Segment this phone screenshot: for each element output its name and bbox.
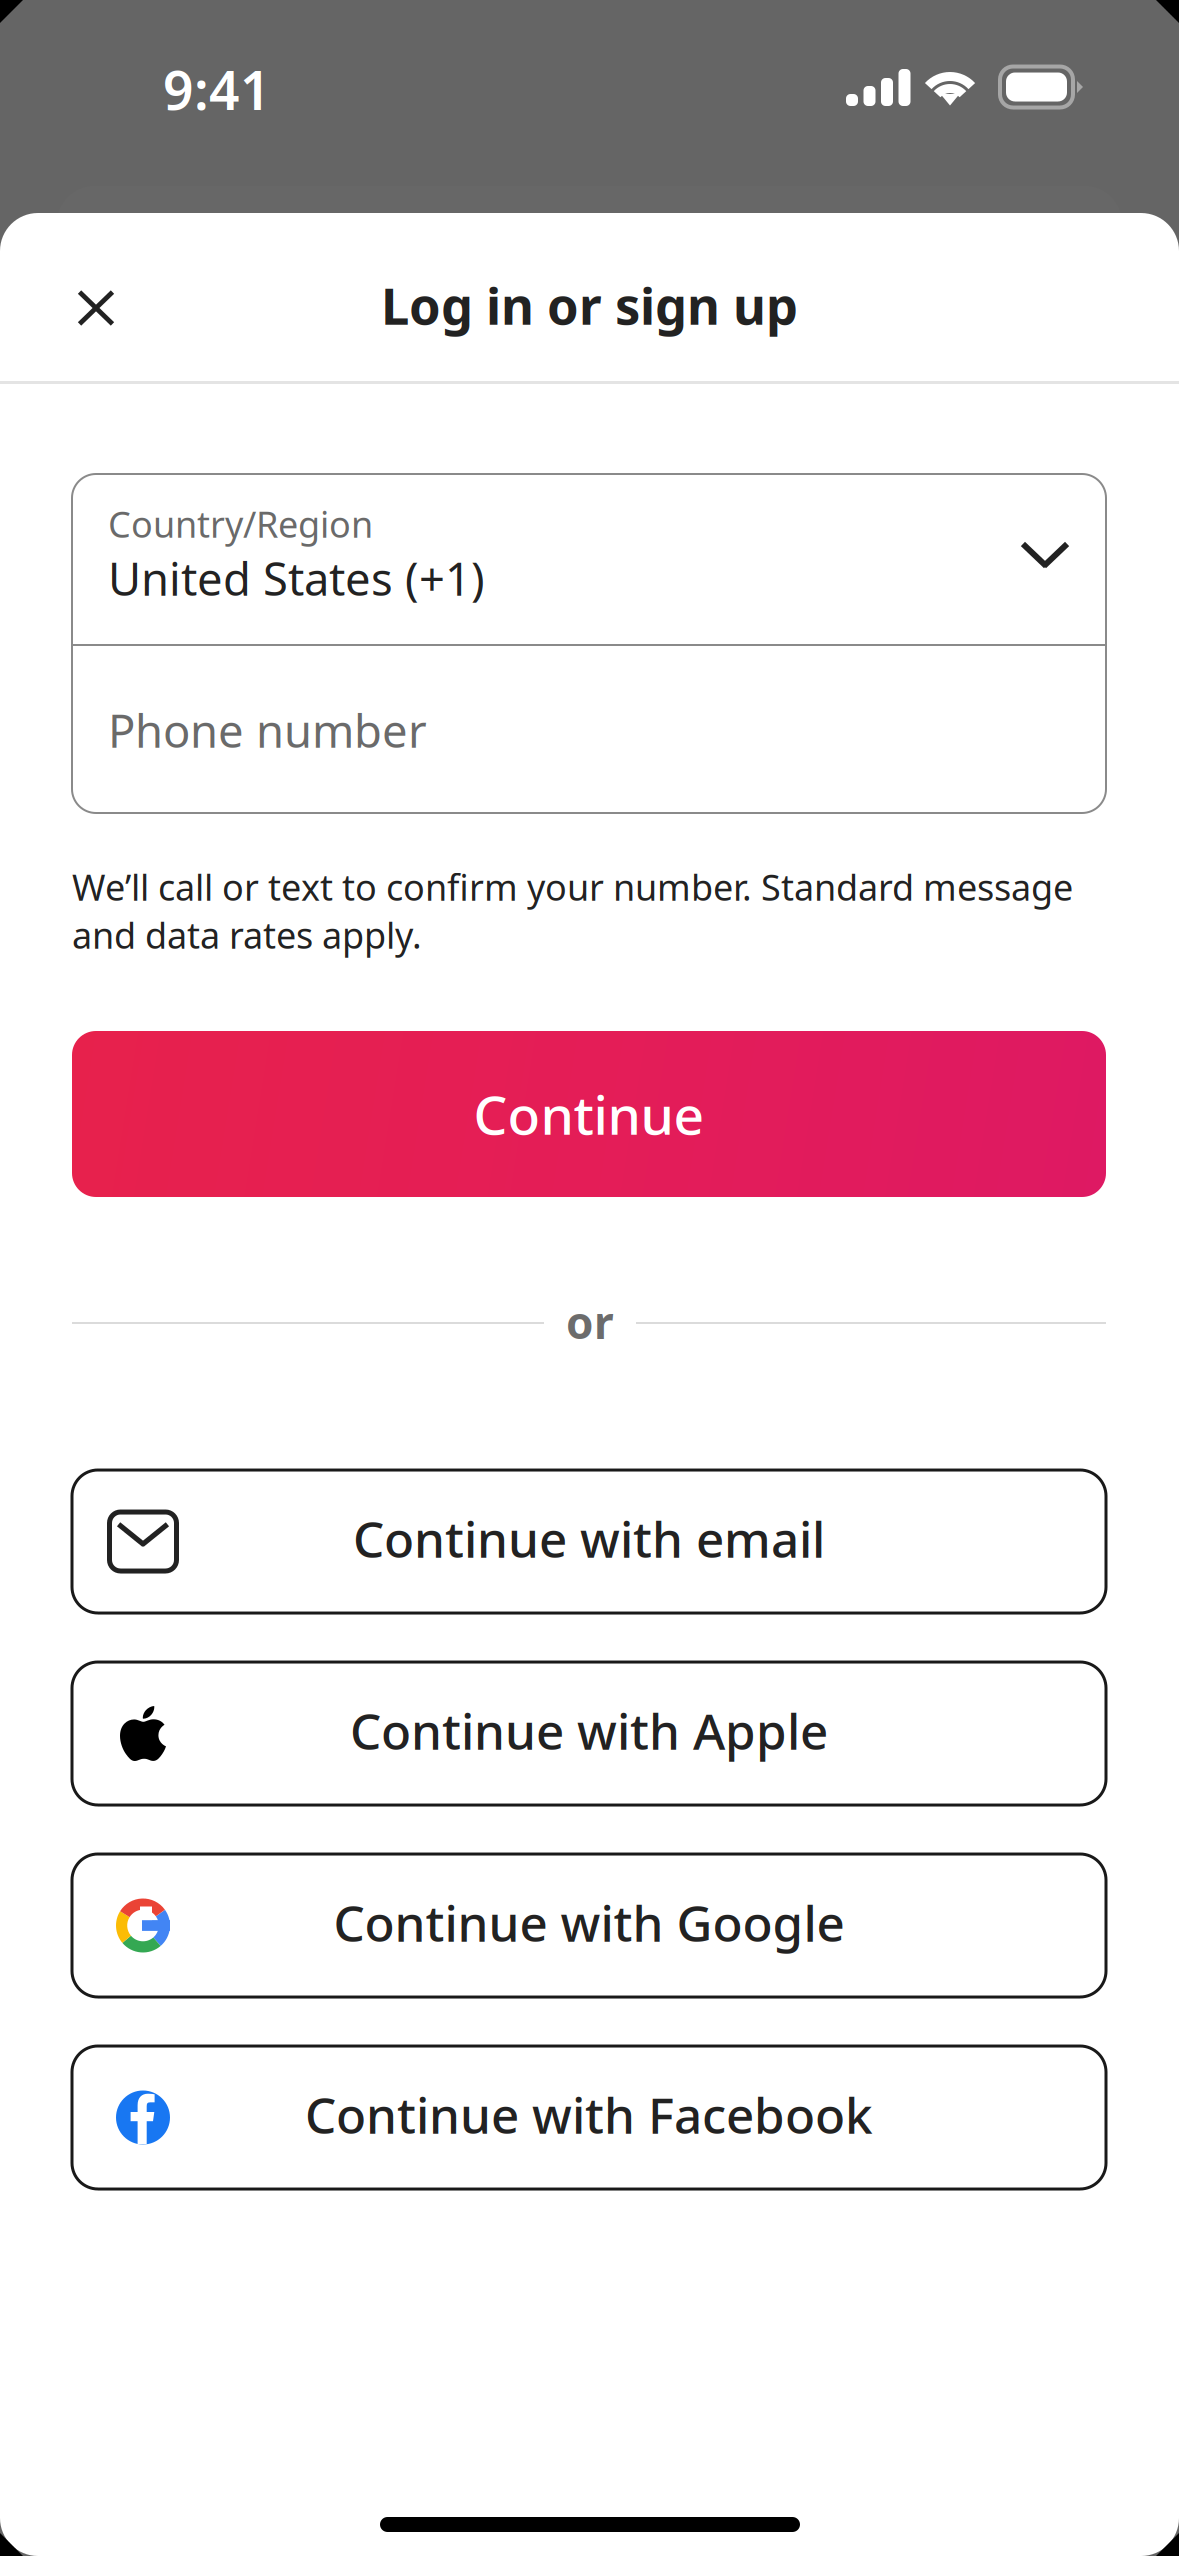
staticText: Phone number: [108, 700, 427, 760]
staticText: Continue with Facebook: [305, 2082, 873, 2147]
staticText: Continue with Google: [333, 1890, 844, 1955]
button[interactable]: Continue with Google: [72, 1854, 1106, 1997]
button[interactable]: Country/Region: [72, 474, 1106, 645]
button[interactable]: Close: [48, 260, 144, 356]
staticText: Country/Region: [108, 500, 373, 548]
button[interactable]: Phone number: [72, 645, 1106, 812]
staticText: Continue with email: [353, 1506, 825, 1571]
staticText: or: [566, 1293, 614, 1351]
button[interactable]: Continue: [72, 1031, 1106, 1197]
staticText: Continue: [473, 1079, 704, 1149]
staticText: We’ll call or text to confirm your numbe…: [72, 863, 1073, 959]
staticText: United States (+1): [108, 548, 485, 608]
button[interactable]: Continue with email: [72, 1470, 1106, 1613]
button[interactable]: Continue with Facebook: [72, 2046, 1106, 2189]
staticText: Log in or sign up: [381, 271, 798, 339]
staticText: 9:41: [163, 54, 271, 125]
staticText: Continue with Apple: [350, 1698, 828, 1763]
button[interactable]: Continue with Apple: [72, 1662, 1106, 1805]
